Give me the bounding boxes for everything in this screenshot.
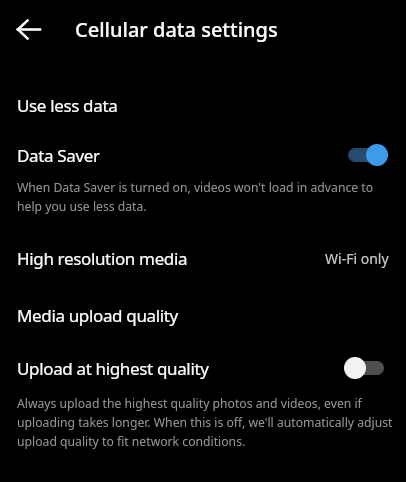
staticText: Always upload the highest quality photos…	[17, 395, 393, 449]
button[interactable]: Upload at highest quality	[0, 346, 406, 390]
button[interactable]	[0, 0, 58, 58]
staticText: Use less data	[17, 94, 118, 117]
staticText: When Data Saver is turned on, videos won…	[17, 179, 374, 214]
staticText: Upload at highest quality	[17, 357, 209, 380]
staticText: Wi-Fi only	[325, 249, 389, 268]
button[interactable]: Use less data	[0, 83, 406, 127]
staticText: Media upload quality	[17, 304, 178, 327]
button[interactable]: Media upload quality	[0, 293, 406, 337]
button[interactable]: High resolution media	[0, 236, 406, 280]
staticText: Data Saver	[17, 144, 100, 167]
button[interactable]: Data Saver	[0, 133, 406, 177]
staticText: Cellular data settings	[75, 16, 278, 43]
staticText: High resolution media	[17, 247, 188, 270]
